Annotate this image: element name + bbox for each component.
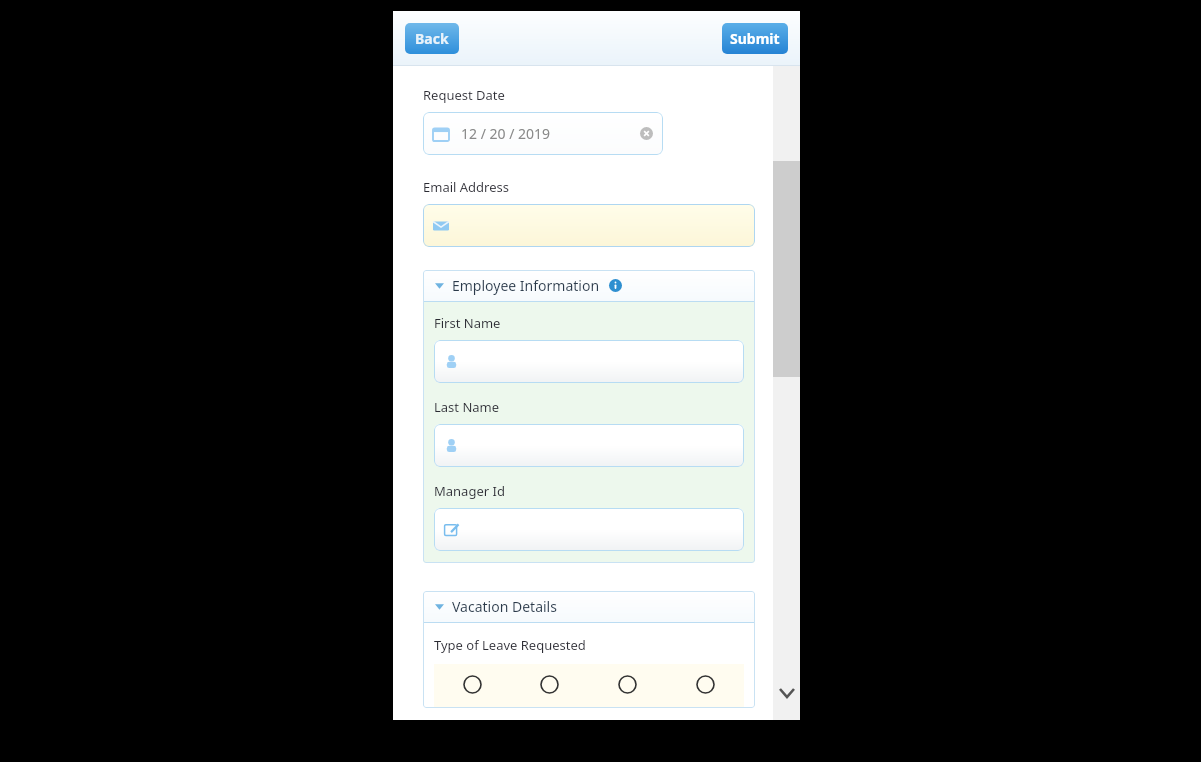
- staticText: Request Date: [423, 86, 505, 104]
- button[interactable]: [434, 424, 744, 467]
- button[interactable]: Back: [405, 23, 459, 54]
- button[interactable]: 12 / 20 / 2019: [423, 112, 663, 155]
- staticText: Type of Leave Requested: [434, 636, 586, 654]
- button[interactable]: Submit: [722, 23, 788, 54]
- staticText: Last Name: [434, 398, 500, 416]
- button[interactable]: [423, 204, 755, 247]
- staticText: Vacation Details: [452, 597, 557, 616]
- button[interactable]: [511, 664, 588, 708]
- staticText: Manager Id: [434, 482, 505, 500]
- button[interactable]: [666, 664, 744, 708]
- button[interactable]: Information: [609, 279, 622, 292]
- staticText: Email Address: [423, 178, 509, 196]
- button[interactable]: Clear date: [640, 127, 653, 140]
- staticText: First Name: [434, 314, 501, 332]
- button[interactable]: [434, 508, 744, 551]
- staticText: Employee Information: [452, 276, 600, 295]
- button[interactable]: [588, 664, 666, 708]
- staticText: Back: [415, 29, 449, 48]
- button[interactable]: [434, 340, 744, 383]
- button[interactable]: [434, 664, 511, 708]
- staticText: Submit: [730, 29, 780, 48]
- button[interactable]: Scroll down: [776, 682, 798, 704]
- button[interactable]: Employee Information: [423, 270, 755, 301]
- button[interactable]: Vacation Details: [423, 591, 755, 622]
- staticText: 12 / 20 / 2019: [461, 124, 551, 143]
